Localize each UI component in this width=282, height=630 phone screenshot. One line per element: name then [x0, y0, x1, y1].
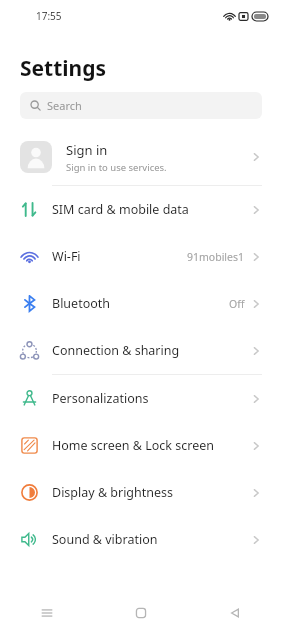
staticText: 17:55: [36, 9, 62, 23]
staticText: Sign in to use services.: [66, 161, 167, 174]
staticText: 91mobiles1: [187, 250, 245, 264]
staticText: Connection & sharing: [52, 342, 180, 359]
button[interactable]: Display & brightness: [0, 469, 282, 516]
staticText: Off: [229, 297, 245, 311]
staticText: Search: [47, 98, 82, 113]
staticText: Sign in: [66, 141, 108, 159]
button[interactable]: Home: [94, 596, 188, 630]
staticText: Wi-Fi: [52, 248, 81, 265]
staticText: Personalizations: [52, 390, 149, 407]
staticText: Sound & vibration: [52, 531, 158, 548]
button[interactable]: Search: [20, 92, 262, 119]
button[interactable]: Connection & sharing: [0, 327, 282, 374]
button[interactable]: Wi-Fi: [0, 233, 282, 280]
button[interactable]: Recent apps: [0, 596, 94, 630]
staticText: Settings: [20, 54, 107, 83]
button[interactable]: Back: [188, 596, 282, 630]
staticText: Bluetooth: [52, 295, 111, 312]
staticText: Home screen & Lock screen: [52, 437, 214, 454]
button[interactable]: Personalizations: [0, 375, 282, 422]
button[interactable]: SIM card & mobile data: [0, 186, 282, 233]
staticText: SIM card & mobile data: [52, 201, 189, 218]
button[interactable]: Home screen & Lock screen: [0, 422, 282, 469]
button[interactable]: Sign in: [0, 129, 282, 185]
staticText: Display & brightness: [52, 484, 174, 501]
button[interactable]: Sound & vibration: [0, 516, 282, 563]
button[interactable]: Bluetooth: [0, 280, 282, 327]
